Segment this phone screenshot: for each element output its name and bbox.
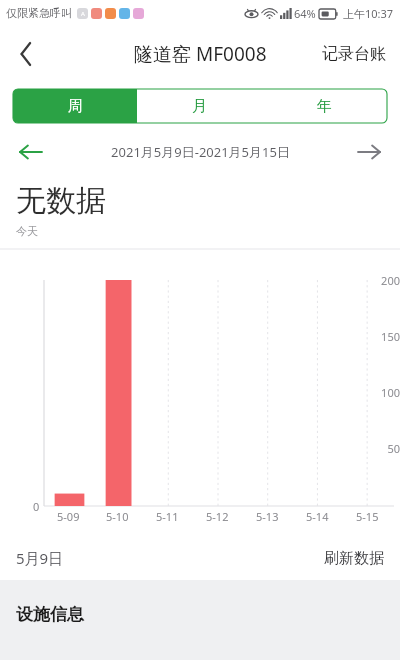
staticText: 无数据 [16,182,106,220]
staticText: 周 [68,97,83,116]
staticText: 5-09 [57,509,80,524]
staticText: 仅限紧急呼叫 [6,6,72,20]
staticText: 5-10 [106,509,129,524]
staticText: 5月9日 [16,548,64,568]
button[interactable]: 刷新数据 [308,541,400,576]
button[interactable]: Previous week [0,130,62,174]
staticText: 0 [33,499,40,514]
staticText: 刷新数据 [324,549,384,568]
staticText: 2021月5月9日-2021月5月15日 [111,143,290,161]
staticText: 记录台账 [322,44,386,64]
staticText: 5-15 [356,509,379,524]
staticText: A [81,10,85,18]
button[interactable]: Back [0,28,52,80]
button[interactable]: 记录台账 [308,34,400,74]
button[interactable]: 周 [13,89,137,123]
staticText: 100 [362,385,400,400]
staticText: 150 [362,329,400,344]
staticText: 5-13 [256,509,279,524]
staticText: 今天 [16,224,38,238]
staticText: 50 [362,441,400,456]
button[interactable]: 月 [137,89,262,123]
staticText: 200 [362,273,400,288]
staticText: 5-11 [156,509,179,524]
staticText: 隧道窑 MF0008 [134,41,267,67]
button[interactable]: 年 [262,89,387,123]
staticText: 设施信息 [16,604,84,625]
staticText: 上午10:37 [343,6,394,21]
staticText: 月 [192,97,207,116]
button[interactable]: Next week [338,130,400,174]
staticText: 年 [317,97,332,116]
staticText: 64% [294,6,316,21]
staticText: 5-12 [206,509,229,524]
staticText: 5-14 [306,509,329,524]
